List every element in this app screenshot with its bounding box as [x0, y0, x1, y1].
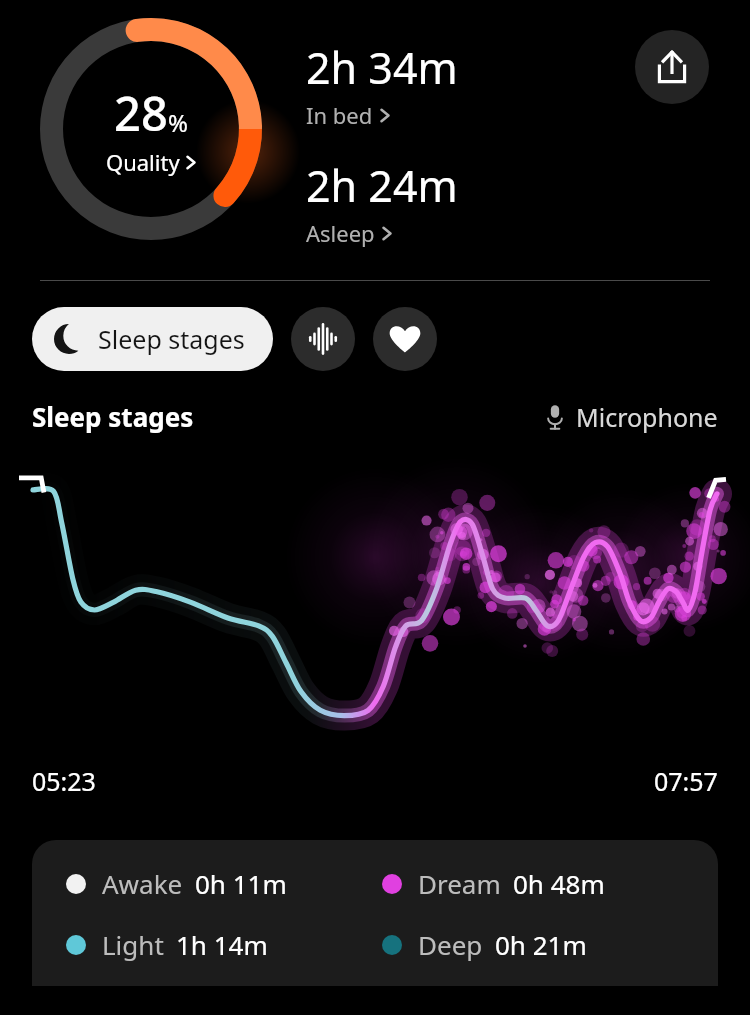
staticText: % — [168, 106, 188, 139]
button[interactable]: 28 — [38, 16, 264, 242]
staticText: 05:23 — [32, 764, 96, 798]
staticText: 07:57 — [654, 764, 718, 798]
button[interactable]: 2h 34m — [306, 38, 458, 130]
button[interactable]: Sound — [291, 307, 355, 371]
staticText: Deep — [418, 927, 483, 962]
staticText: Dream — [418, 866, 501, 901]
staticText: Sleep stages — [98, 322, 245, 356]
staticText: Light — [102, 927, 164, 962]
staticText: Awake — [102, 866, 183, 901]
staticText: 2h 24m — [306, 156, 458, 215]
staticText: 2h 34m — [306, 38, 458, 97]
staticText: Quality — [106, 147, 180, 177]
staticText: Sleep stages — [32, 399, 194, 434]
staticText: 0h 21m — [495, 927, 587, 962]
staticText: In bed — [306, 100, 373, 130]
staticText: 1h 14m — [176, 927, 268, 962]
staticText: Asleep — [306, 218, 375, 248]
button[interactable]: Heart rate — [373, 307, 437, 371]
staticText: 0h 48m — [513, 866, 605, 901]
button[interactable]: 2h 24m — [306, 156, 458, 248]
button[interactable]: Microphone — [546, 400, 718, 434]
button[interactable]: Sleep stages — [32, 307, 273, 371]
button[interactable]: Awake — [32, 840, 718, 986]
staticText: Microphone — [576, 400, 718, 434]
button[interactable]: Share — [635, 30, 709, 104]
staticText: 28 — [114, 81, 168, 145]
staticText: 0h 11m — [195, 866, 287, 901]
